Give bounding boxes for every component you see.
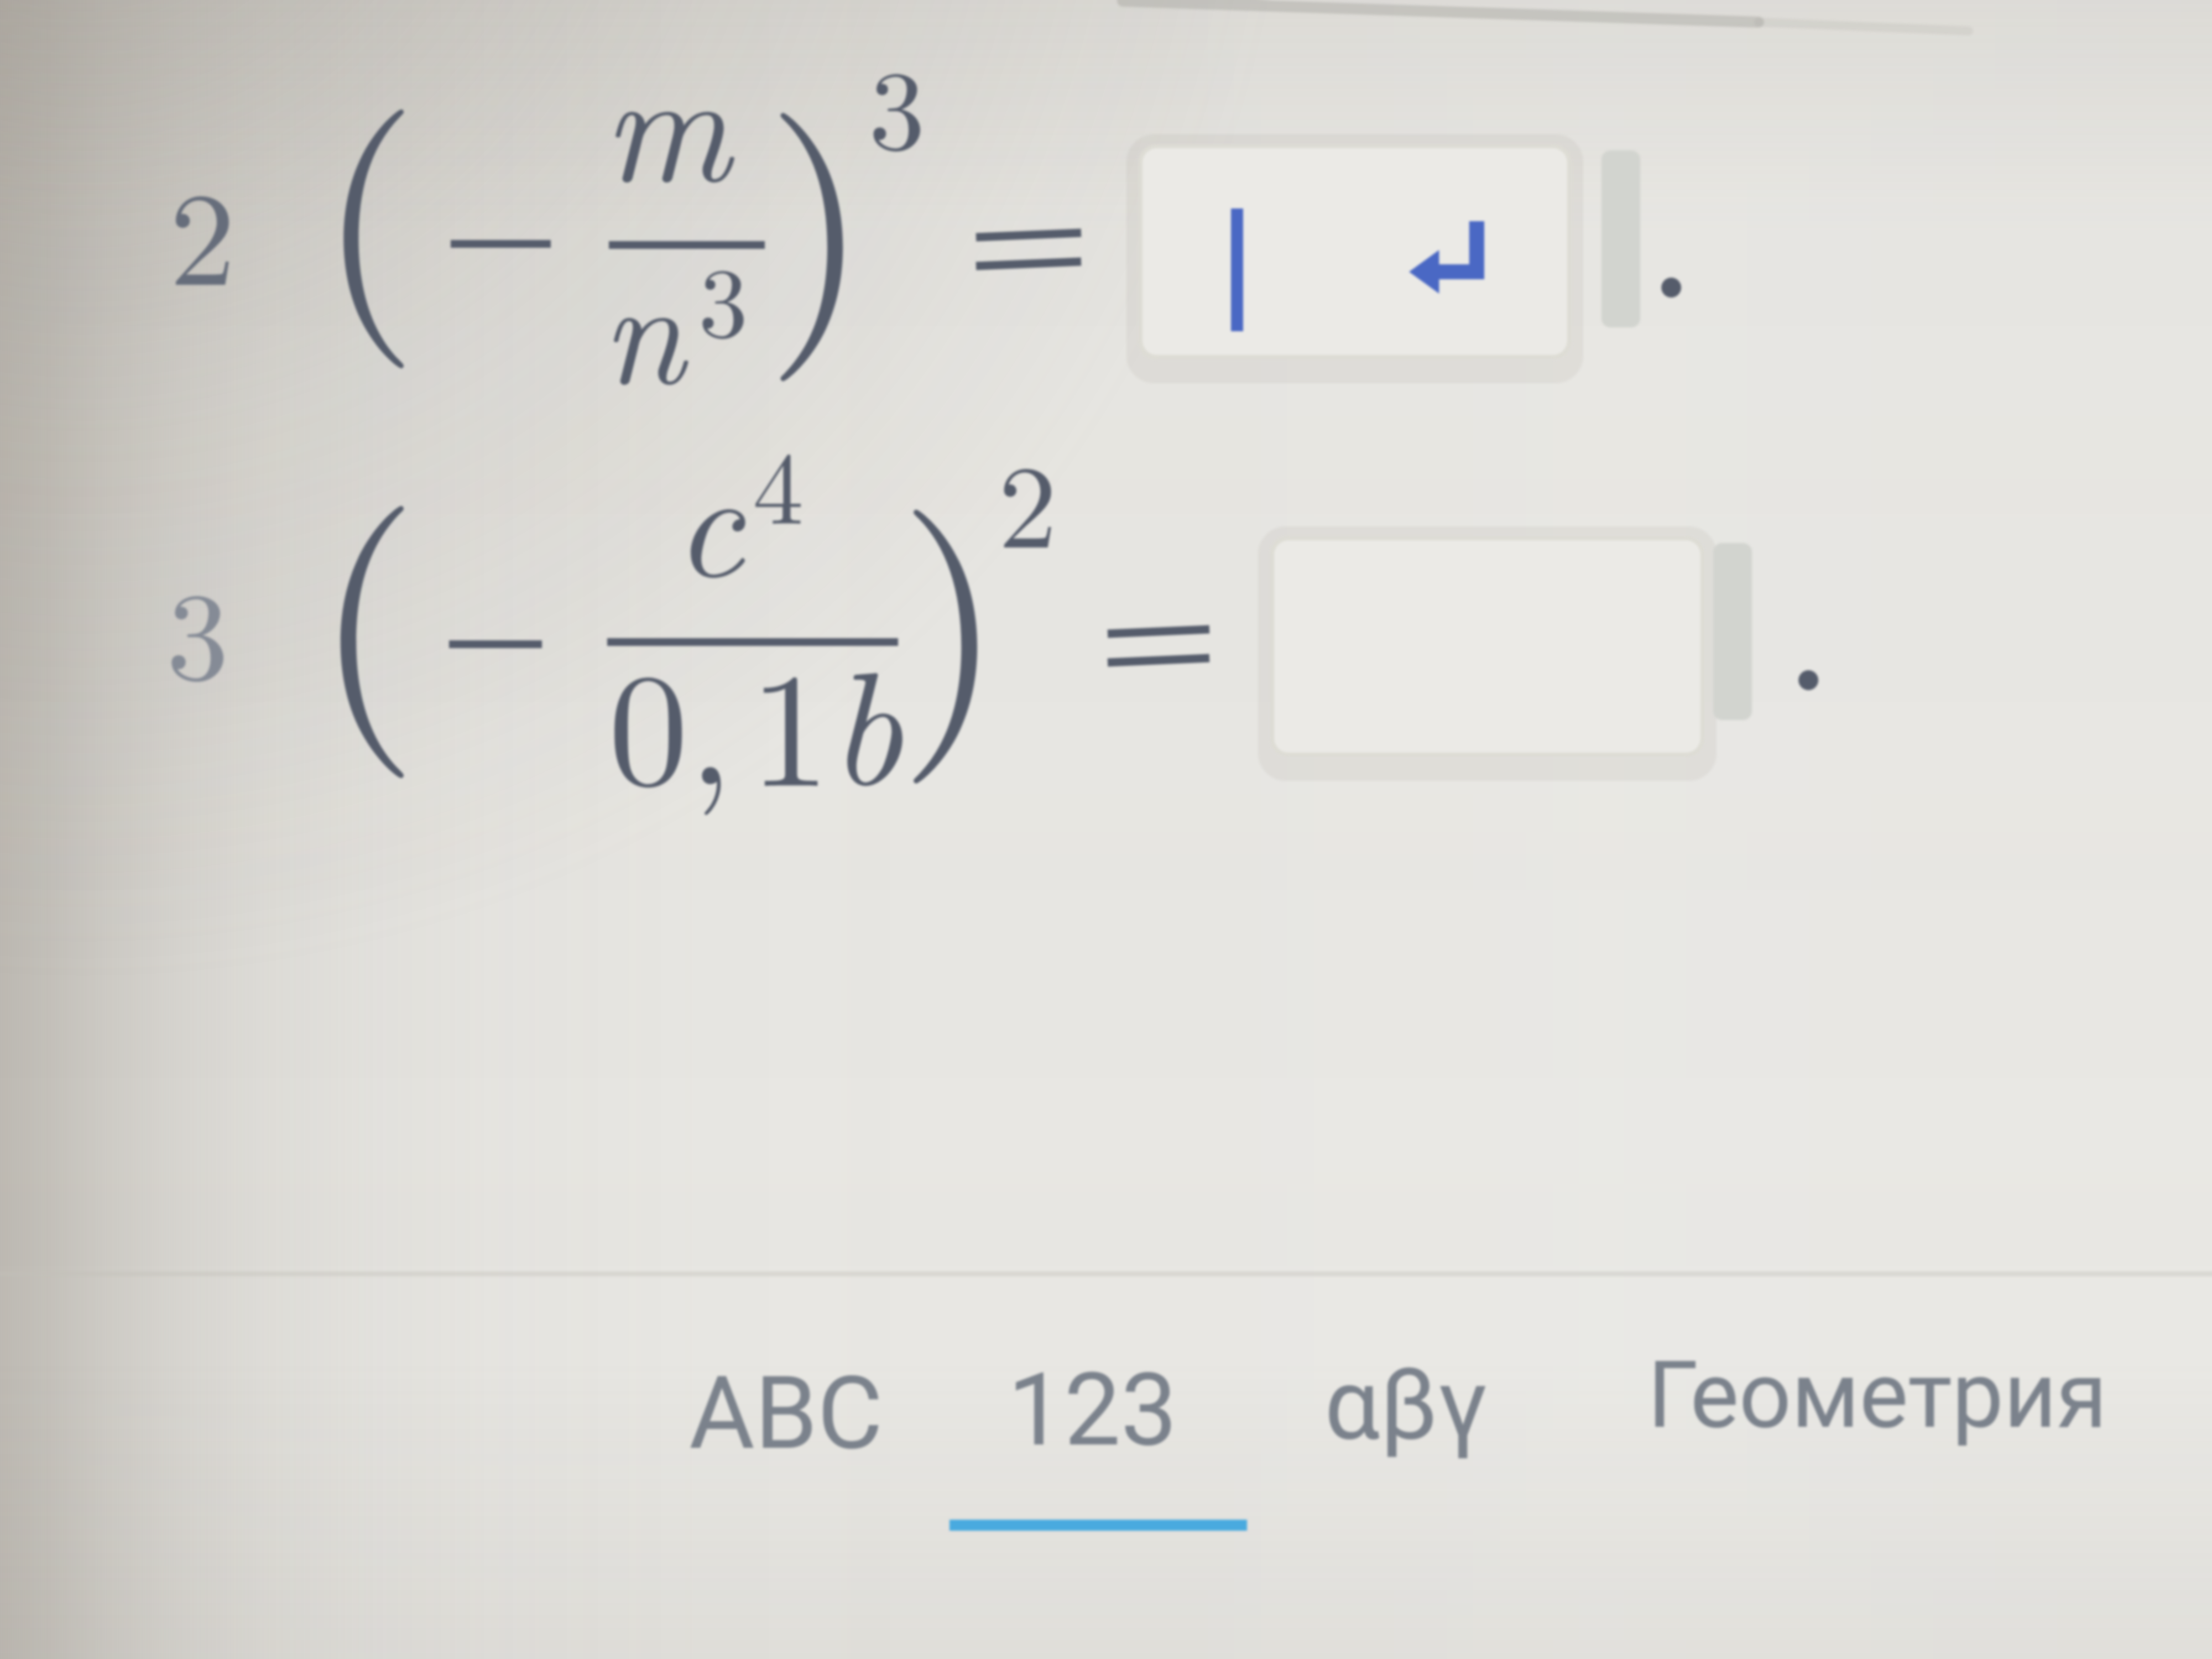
staticText: b xyxy=(829,604,903,830)
staticText: ( xyxy=(314,404,420,789)
staticText: ) xyxy=(765,12,870,392)
staticText: 3 xyxy=(698,226,748,366)
staticText: c xyxy=(674,406,744,620)
button[interactable]: Submit answer xyxy=(1396,208,1498,315)
staticText: 2 xyxy=(169,135,236,323)
staticText: 1 xyxy=(749,602,831,833)
staticText: 3 xyxy=(166,539,229,715)
staticText: ) xyxy=(898,406,1005,794)
staticText: Геометрия xyxy=(1647,1342,2107,1449)
staticText: αβγ xyxy=(1324,1348,1488,1463)
button[interactable]: Answer field for question 3 xyxy=(1270,536,1704,757)
staticText: ABC xyxy=(689,1354,883,1472)
staticText: 0, xyxy=(608,604,733,831)
staticText: m xyxy=(603,5,731,226)
staticText: . xyxy=(1645,86,1698,352)
button[interactable]: αβγ xyxy=(1259,1327,1556,1559)
staticText: 2 xyxy=(998,415,1057,582)
staticText: . xyxy=(1782,478,1835,744)
button[interactable]: Геометрия xyxy=(1635,1327,2121,1559)
button[interactable]: 123 xyxy=(936,1327,1251,1559)
staticText: 4 xyxy=(753,409,804,554)
staticText: ( xyxy=(318,12,419,379)
button[interactable]: Answer field for question 2 xyxy=(1139,144,1571,359)
button[interactable]: ABC xyxy=(636,1327,932,1559)
staticText: 123 xyxy=(1008,1351,1177,1469)
staticText: n xyxy=(602,217,685,426)
staticText: 3 xyxy=(869,23,925,182)
